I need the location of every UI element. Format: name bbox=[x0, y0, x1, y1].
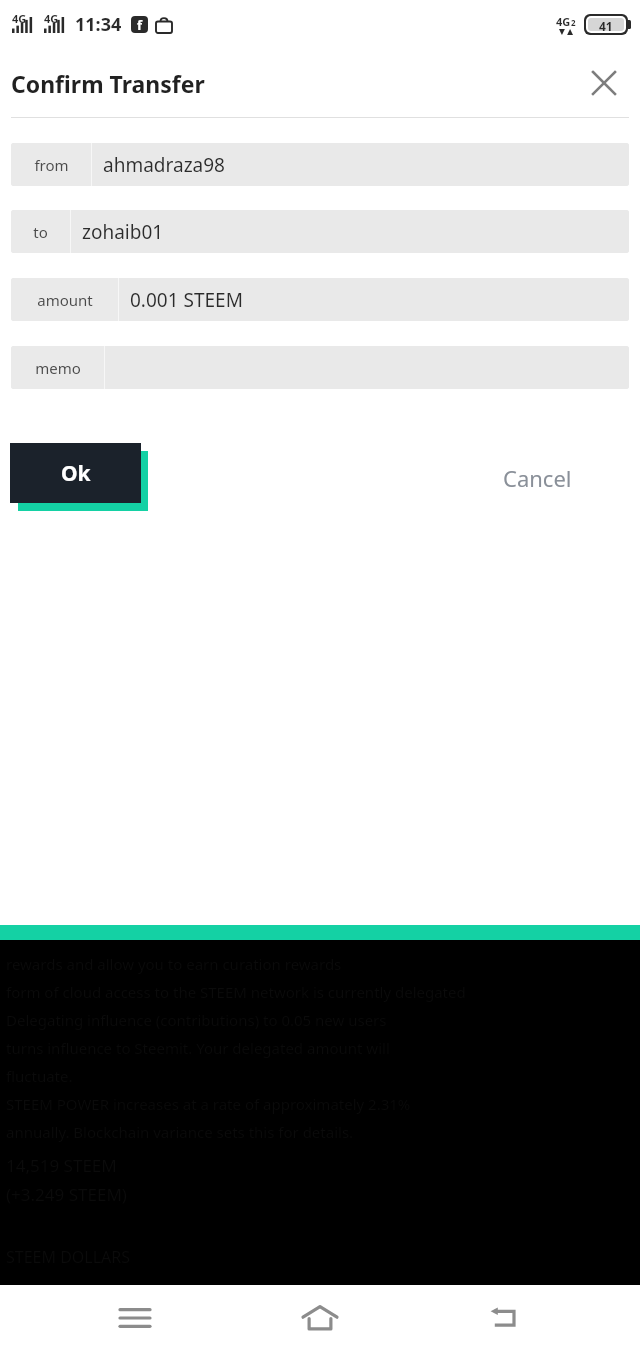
button[interactable]: from bbox=[11, 143, 629, 186]
button[interactable]: Ok bbox=[10, 443, 141, 503]
staticText: Confirm Transfer bbox=[11, 68, 205, 99]
staticText: 0.001 STEEM bbox=[130, 287, 243, 313]
button[interactable]: Cancel bbox=[495, 457, 580, 499]
button[interactable]: Home bbox=[270, 1285, 370, 1351]
staticText: Ok bbox=[61, 459, 91, 488]
staticText: f bbox=[137, 16, 143, 33]
button[interactable]: to bbox=[11, 210, 629, 253]
staticText: 4G bbox=[44, 11, 59, 26]
button[interactable]: Back bbox=[455, 1285, 555, 1351]
button[interactable]: Recents bbox=[85, 1285, 185, 1351]
staticText: zohaib01 bbox=[82, 219, 164, 245]
staticText: amount bbox=[37, 290, 93, 310]
staticText: 2 bbox=[571, 17, 576, 28]
staticText: STEEM DOLLARS bbox=[6, 1246, 131, 1268]
button[interactable]: Close bbox=[582, 61, 626, 105]
staticText: ahmadraza98 bbox=[103, 152, 225, 178]
staticText: from bbox=[34, 155, 69, 175]
button[interactable]: amount bbox=[11, 278, 629, 321]
staticText: to bbox=[33, 222, 48, 242]
staticText: 4G bbox=[12, 11, 27, 26]
staticText: 11:34 bbox=[75, 12, 122, 37]
button[interactable]: memo bbox=[11, 346, 629, 389]
staticText: Cancel bbox=[503, 463, 572, 493]
staticText: memo bbox=[35, 358, 81, 378]
staticText: 41 bbox=[599, 18, 613, 31]
staticText: 4G bbox=[556, 14, 571, 29]
